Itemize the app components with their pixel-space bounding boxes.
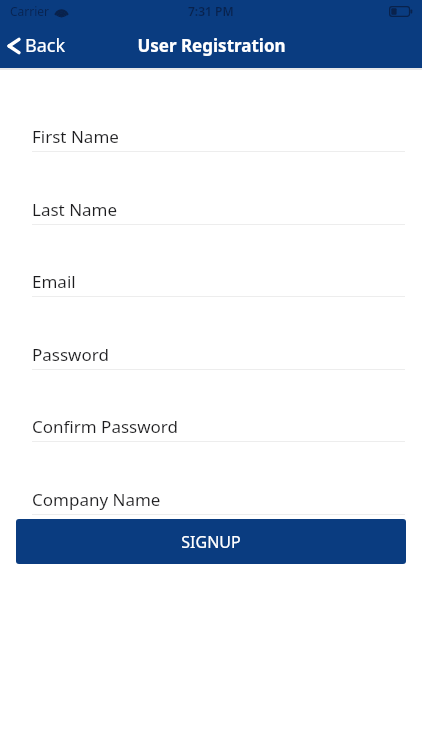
button[interactable]: Company Name	[0, 485, 422, 514]
other: Battery level	[389, 6, 413, 17]
staticText: Last Name	[32, 198, 118, 221]
button[interactable]: Confirm Password	[0, 412, 422, 441]
button[interactable]: Password	[0, 340, 422, 369]
button[interactable]: SIGNUP	[16, 519, 406, 564]
staticText: 7:31 PM	[188, 3, 234, 19]
other: Wi-Fi signal	[55, 5, 68, 18]
staticText: Carrier	[10, 3, 50, 19]
button[interactable]: Back	[0, 29, 76, 62]
staticText: First Name	[32, 125, 119, 148]
staticText: User Registration	[137, 34, 286, 57]
staticText: Company Name	[32, 488, 161, 511]
staticText: Back	[25, 33, 66, 58]
staticText: Confirm Password	[32, 415, 178, 438]
button[interactable]: Email	[0, 267, 422, 296]
staticText: Email	[32, 270, 76, 293]
other: Back	[7, 35, 20, 57]
button[interactable]: First Name	[0, 122, 422, 151]
button[interactable]: Last Name	[0, 195, 422, 224]
staticText: Password	[32, 343, 109, 366]
staticText: SIGNUP	[181, 531, 241, 553]
